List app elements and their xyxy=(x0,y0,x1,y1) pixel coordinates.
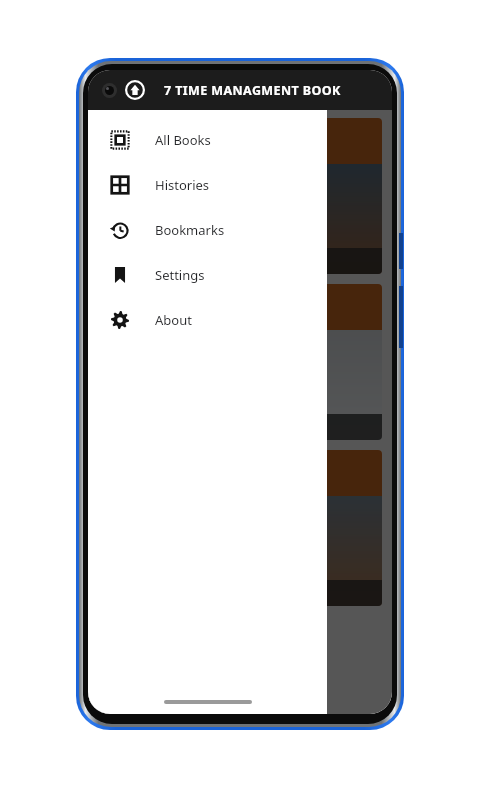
button[interactable]: Personal Keeping xyxy=(98,118,382,274)
button[interactable]: All Books xyxy=(88,117,327,162)
staticText: Settings xyxy=(155,266,205,284)
staticText: Personal Keeping xyxy=(110,126,206,141)
button[interactable]: Time Of Your Life xyxy=(98,284,382,440)
button[interactable]: Bookmarks xyxy=(88,207,327,252)
staticText: Bookmarks xyxy=(155,221,225,239)
button[interactable]: About xyxy=(88,297,327,342)
button[interactable]: Make It Happen xyxy=(98,450,382,606)
button[interactable]: Histories xyxy=(88,162,327,207)
staticText: Personal Keeping xyxy=(108,253,213,269)
staticText: 7 TIME MANAGMENT BOOK xyxy=(164,82,341,99)
staticText: Organize Your Energy to Full Effect xyxy=(110,310,208,318)
staticText: Histories xyxy=(155,176,210,194)
staticText: Improve Your Motivation and Your Goals xyxy=(110,144,225,152)
button[interactable]: Navigate up xyxy=(123,78,147,102)
button[interactable]: Settings xyxy=(88,252,327,297)
staticText: About xyxy=(155,311,192,329)
staticText: All Books xyxy=(155,131,211,149)
